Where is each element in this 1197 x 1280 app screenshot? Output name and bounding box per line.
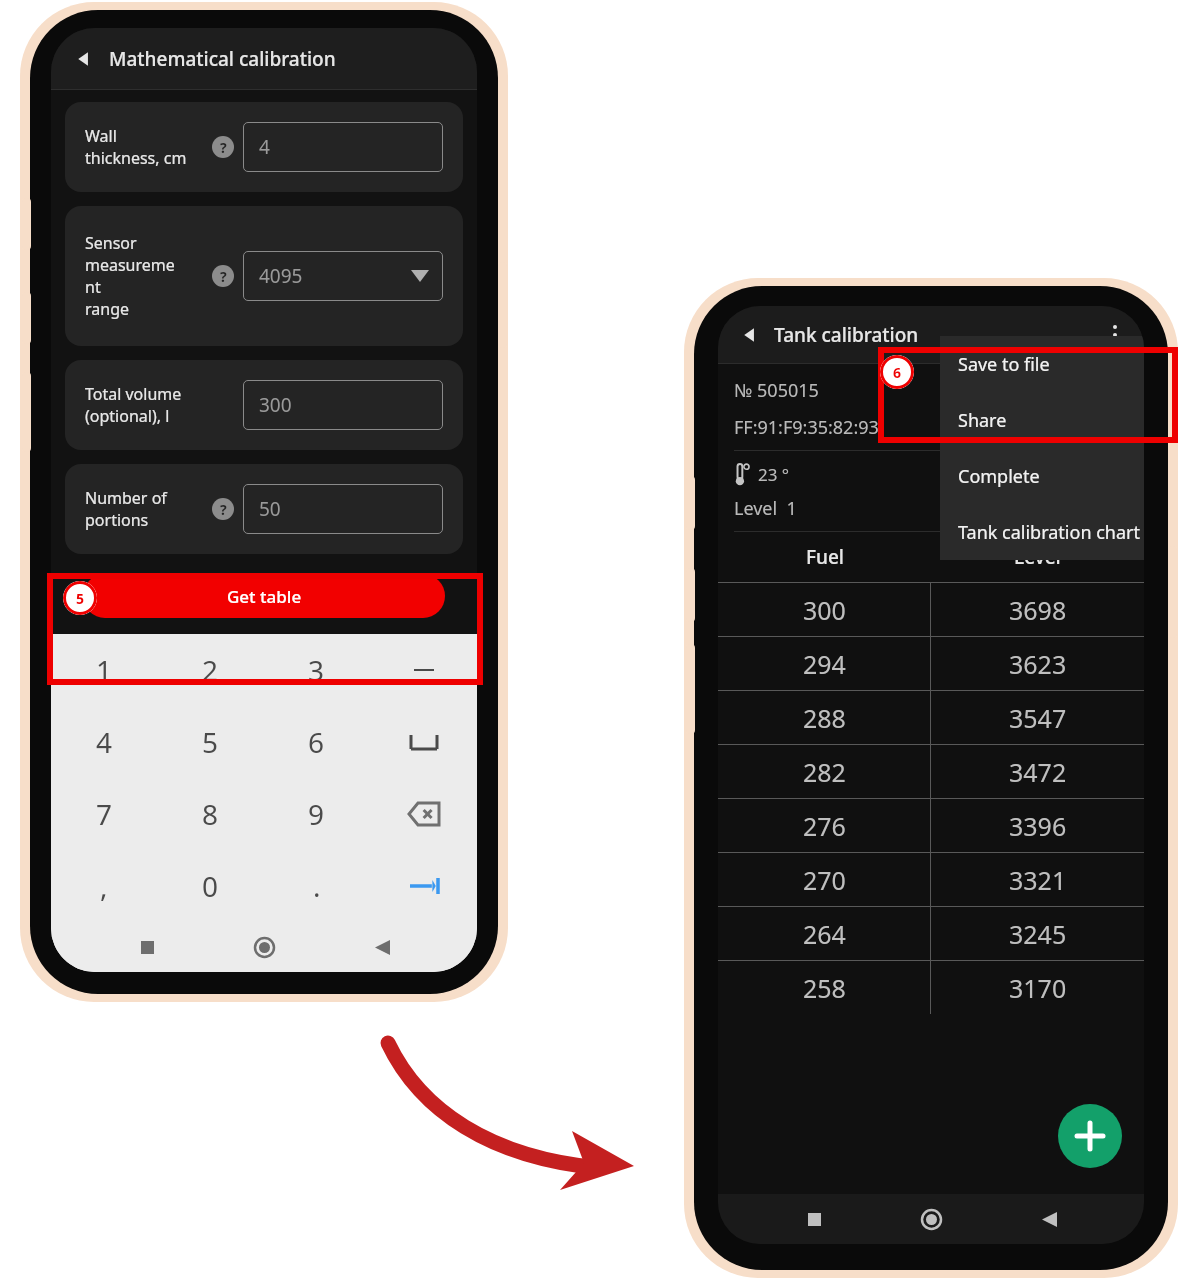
button[interactable] xyxy=(370,706,477,778)
button[interactable]: 5 xyxy=(157,706,263,778)
staticText: 276 xyxy=(803,809,846,843)
button[interactable]: 264 xyxy=(718,907,1144,960)
button[interactable]: 3 xyxy=(263,634,370,706)
staticText: 3623 xyxy=(1009,647,1067,681)
staticText: Save to file xyxy=(958,352,1050,377)
staticText: 8 xyxy=(202,795,219,833)
staticText: 9 xyxy=(308,795,325,833)
staticText: Total volume xyxy=(85,383,182,405)
staticText: 264 xyxy=(803,917,846,951)
button[interactable] xyxy=(370,778,477,850)
button[interactable]: 1 xyxy=(51,634,157,706)
staticText: 300 xyxy=(259,392,292,418)
staticText: range xyxy=(85,298,130,320)
staticText: 0 xyxy=(202,867,219,905)
staticText: 3698 xyxy=(1009,593,1067,627)
button[interactable]: 288 xyxy=(718,691,1144,744)
staticText: (optional), l xyxy=(85,405,170,427)
staticText: 5 xyxy=(202,723,219,761)
staticText: 4 xyxy=(259,134,270,160)
staticText: Tank calibration xyxy=(774,322,919,348)
button[interactable]: Back xyxy=(67,42,101,76)
button[interactable]: Number of xyxy=(65,464,463,554)
button[interactable]: More options xyxy=(1098,318,1132,352)
button[interactable]: 6 xyxy=(263,706,370,778)
button[interactable]: Share xyxy=(940,392,1144,448)
staticText: Number of xyxy=(85,487,167,509)
staticText: Get table xyxy=(227,585,302,608)
button[interactable]: Help xyxy=(212,498,234,520)
button[interactable]: 0 xyxy=(157,850,263,922)
button[interactable]: Home xyxy=(242,925,286,969)
button[interactable]: 4 xyxy=(51,706,157,778)
button[interactable]: 4095 xyxy=(243,251,443,301)
staticText: 50 xyxy=(259,496,281,522)
staticText: Complete xyxy=(958,464,1040,489)
button[interactable]: Help xyxy=(212,136,234,158)
staticText: 288 xyxy=(803,701,846,735)
button[interactable]: 4 xyxy=(243,122,443,172)
staticText: 258 xyxy=(803,971,846,1005)
staticText: 3472 xyxy=(1009,755,1067,789)
staticText: ? xyxy=(220,500,227,519)
button[interactable]: 276 xyxy=(718,799,1144,852)
staticText: . xyxy=(313,867,321,905)
staticText: 3 xyxy=(308,651,325,689)
staticText: Tank calibration chart xyxy=(958,520,1140,545)
staticText: 3245 xyxy=(1009,917,1067,951)
button[interactable]: 300 xyxy=(718,583,1144,636)
staticText: 282 xyxy=(803,755,846,789)
button[interactable] xyxy=(370,634,477,706)
button[interactable]: Get table xyxy=(83,574,445,618)
button[interactable]: Add xyxy=(1058,1104,1122,1168)
button[interactable]: Total volume xyxy=(65,360,463,450)
staticText: Level 1 xyxy=(734,496,797,521)
button[interactable]: Home xyxy=(909,1197,953,1241)
button[interactable]: Back xyxy=(360,925,404,969)
staticText: № 505015 xyxy=(734,378,819,403)
button[interactable]: Tank calibration chart xyxy=(940,504,1144,560)
button[interactable]: 2 xyxy=(157,634,263,706)
staticText: ? xyxy=(220,138,227,157)
button[interactable]: , xyxy=(51,850,157,922)
staticText: Share xyxy=(958,408,1007,433)
staticText: 4095 xyxy=(259,263,303,289)
staticText: 300 xyxy=(803,593,846,627)
button[interactable]: Back xyxy=(1027,1197,1071,1241)
staticText: FF:91:F9:35:82:93 xyxy=(734,415,879,440)
staticText: 2 xyxy=(202,651,219,689)
staticText: 6 xyxy=(893,363,902,382)
button[interactable]: Wall xyxy=(65,102,463,192)
button[interactable]: Recents xyxy=(792,1197,836,1241)
button[interactable]: 294 xyxy=(718,637,1144,690)
button[interactable]: Recents xyxy=(125,925,169,969)
staticText: 6 xyxy=(308,723,325,761)
button[interactable]: 258 xyxy=(718,961,1144,1014)
button[interactable]: Save to file xyxy=(940,336,1144,392)
button[interactable] xyxy=(370,850,477,922)
staticText: Level xyxy=(1014,544,1061,570)
button[interactable]: 8 xyxy=(157,778,263,850)
button[interactable]: 7 xyxy=(51,778,157,850)
staticText: Fuel xyxy=(806,544,844,570)
staticText: thickness, cm xyxy=(85,147,187,169)
staticText: 3396 xyxy=(1009,809,1067,843)
button[interactable]: 9 xyxy=(263,778,370,850)
staticText: Wall xyxy=(85,125,117,147)
staticText: ? xyxy=(220,267,227,286)
button[interactable]: 50 xyxy=(243,484,443,534)
button[interactable]: Sensor xyxy=(65,206,463,346)
button[interactable]: 300 xyxy=(243,380,443,430)
button[interactable]: Complete xyxy=(940,448,1144,504)
staticText: Sensor xyxy=(85,232,137,254)
staticText: 7 xyxy=(96,795,113,833)
staticText: portions xyxy=(85,509,149,531)
button[interactable]: . xyxy=(263,850,370,922)
button[interactable]: 270 xyxy=(718,853,1144,906)
staticText: 1 xyxy=(96,651,113,689)
button[interactable]: Back xyxy=(734,319,766,351)
staticText: , xyxy=(100,867,108,905)
button[interactable]: Help xyxy=(212,265,234,287)
staticText: 3547 xyxy=(1009,701,1067,735)
button[interactable]: 282 xyxy=(718,745,1144,798)
